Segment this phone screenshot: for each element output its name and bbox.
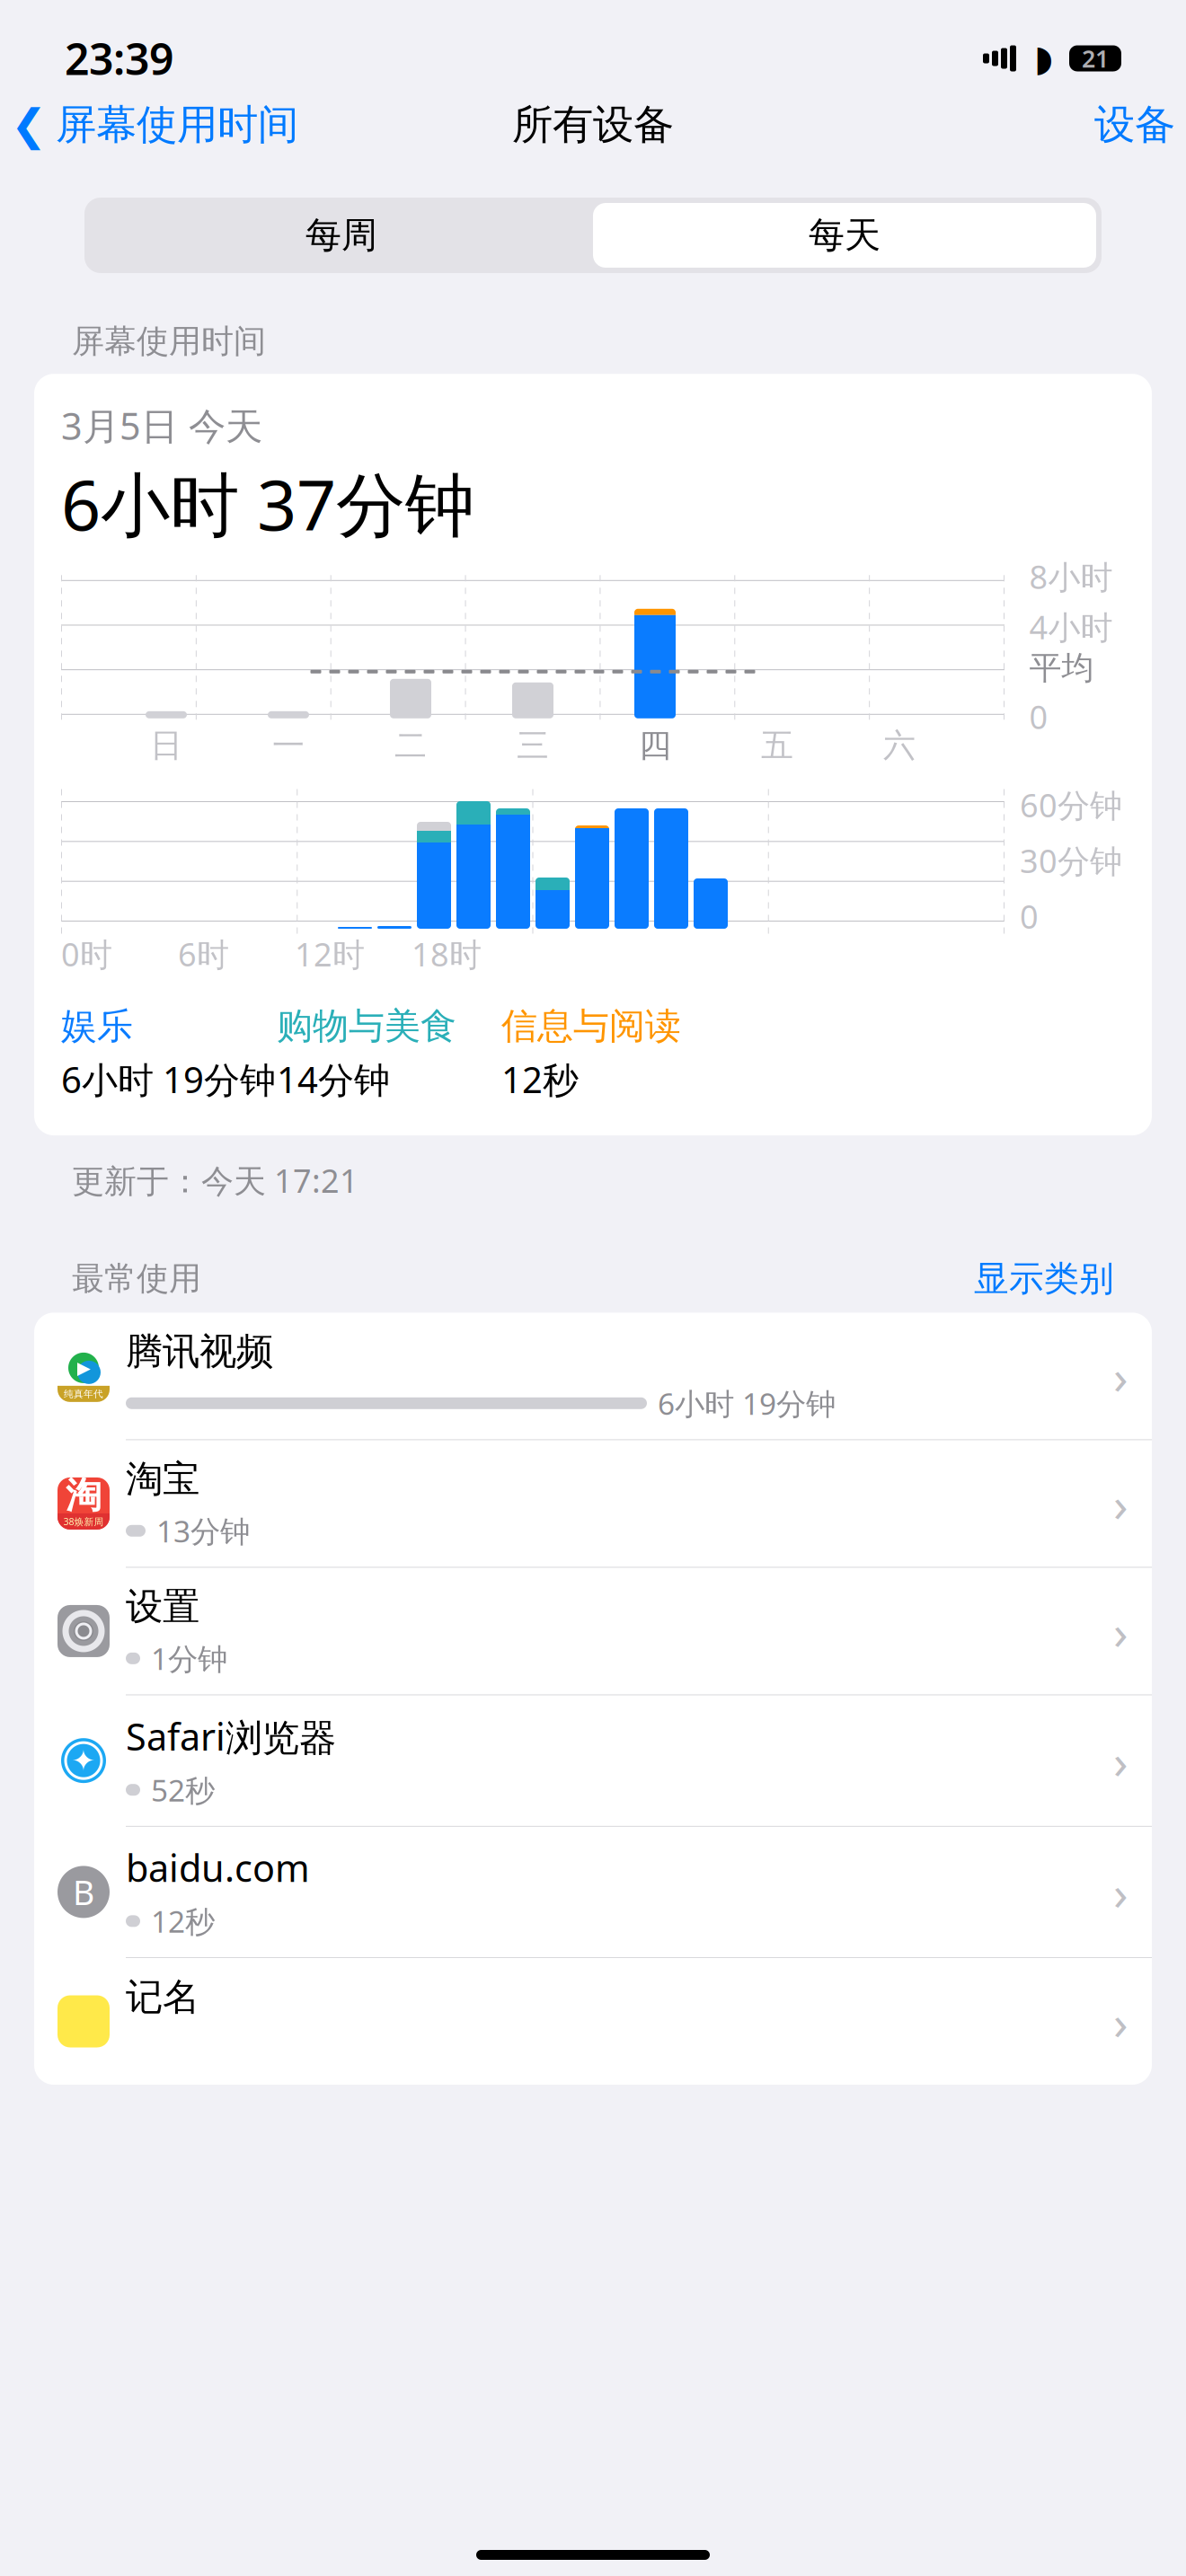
button[interactable]: 设备 [1094,93,1175,157]
staticText: ◗ [1034,38,1053,79]
staticText: 0 [1020,895,1039,938]
staticText: 更新于：今天 17:21 [72,1159,358,1202]
button[interactable]: 记名 [34,1958,1152,2085]
staticText: › [1113,1860,1128,1924]
staticText: 14分钟 [277,1055,390,1103]
staticText: 52秒 [151,1770,215,1810]
staticText: 一 [272,726,305,765]
staticText: › [1113,1599,1128,1663]
staticText: › [1113,1344,1128,1408]
staticText: 12时 [295,932,365,975]
staticText: 娱乐 [61,1004,133,1048]
staticText: 12秒 [501,1055,579,1103]
staticText: 4小时 [1029,605,1113,648]
staticText: 23:39 [65,30,173,87]
staticText: ❮ [11,100,47,149]
staticText: 12秒 [151,1901,215,1941]
staticText: 日 [150,726,182,765]
staticText: 6时 [178,932,229,975]
staticText: 二 [394,726,427,765]
button[interactable]: ▶ [34,1313,1152,1439]
staticText: 0 [1029,695,1048,738]
staticText: B [73,1870,94,1914]
staticText: 3月5日 今天 [61,401,262,450]
staticText: baidu.com [126,1843,310,1892]
staticText: 0时 [61,932,112,975]
button[interactable]: ❮ [11,93,298,157]
staticText: 三 [517,726,549,765]
staticText: 淘宝 [126,1456,199,1502]
staticText: ✦ [71,1744,96,1777]
staticText: 平均 [1029,648,1094,688]
staticText: 设置 [126,1584,199,1629]
staticText: 6小时 19分钟 [658,1383,836,1423]
staticText: 显示类别 [974,1257,1114,1300]
staticText: 1分钟 [151,1638,227,1678]
staticText: 6小时 19分钟 [61,1055,276,1103]
staticText: 信息与阅读 [501,1004,681,1048]
button[interactable]: 显示类别 [974,1257,1114,1300]
staticText: 四 [639,726,671,765]
staticText: 购物与美食 [277,1004,456,1048]
button[interactable]: 淘 [34,1440,1152,1567]
staticText: ▶ [77,1358,90,1378]
staticText: 6小时 37分钟 [61,457,474,550]
staticText: 屏幕使用时间 [72,322,266,361]
button[interactable]: B [34,1827,1152,1957]
button[interactable]: 设置 [34,1568,1152,1694]
staticText: Safari浏览器 [126,1711,336,1761]
staticText: 每周 [305,213,377,257]
staticText: 纯真年代 [64,1388,103,1400]
staticText: › [1113,1472,1128,1535]
staticText: 最常使用 [72,1259,201,1299]
staticText: 38焕新周 [63,1515,104,1528]
staticText: 淘 [66,1473,102,1517]
button[interactable]: 每天 [593,203,1096,268]
staticText: 8小时 [1029,555,1113,598]
staticText: 所有设备 [512,100,674,150]
staticText: › [1113,1729,1128,1792]
staticText: 21 [1082,42,1109,74]
staticText: 六 [883,726,916,765]
staticText: › [1113,1990,1128,2053]
staticText: 30分钟 [1020,839,1122,882]
button[interactable]: ✦ [34,1695,1152,1826]
staticText: 每天 [809,213,881,257]
staticText: 18时 [412,932,482,975]
button[interactable]: 每周 [90,203,593,268]
staticText: 腾讯视频 [126,1329,273,1374]
staticText: 设备 [1094,100,1175,150]
staticText: 60分钟 [1020,783,1122,826]
staticText: 13分钟 [156,1511,250,1551]
staticText: 记名 [126,1974,199,2020]
staticText: 屏幕使用时间 [56,100,298,150]
staticText: 五 [761,726,793,765]
